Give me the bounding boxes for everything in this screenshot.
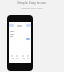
button[interactable]: Nav item [15,55,19,59]
button[interactable]: Nav item [10,55,14,59]
button[interactable]: Stats card [9,24,14,27]
button[interactable]: Nav item [21,55,25,59]
button[interactable]: Title [17,25,22,27]
staticText: Manage your tasks [21,6,43,9]
button[interactable]: Nav item [26,55,30,59]
button[interactable]: Profile card [26,24,31,27]
staticText: Simple. Easy to use. [17,1,47,5]
button[interactable]: Add task [26,38,30,40]
